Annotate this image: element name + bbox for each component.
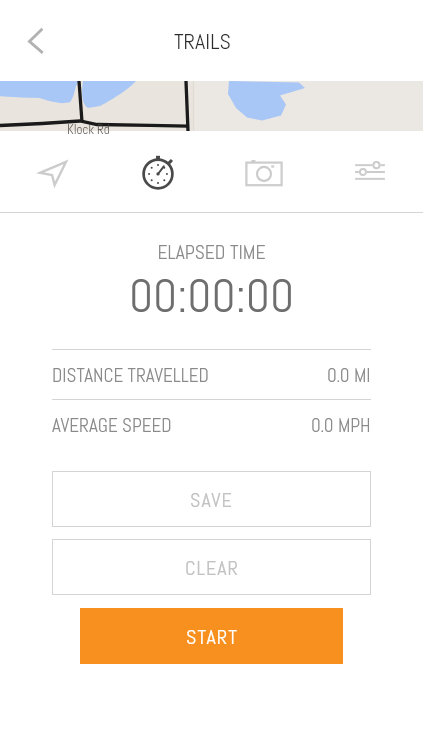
staticText: DISTANCE TRAVELLED — [52, 363, 209, 387]
staticText: TRAILS — [174, 27, 231, 55]
staticText: AVERAGE SPEED — [52, 413, 172, 437]
staticText: START — [186, 624, 238, 649]
staticText: ELAPSED TIME — [0, 240, 423, 265]
button[interactable]: Back — [12, 17, 60, 65]
button[interactable]: CLEAR — [52, 539, 371, 595]
staticText: SAVE — [190, 487, 233, 512]
button[interactable]: Settings — [317, 131, 423, 212]
staticText: Klock Rd — [67, 121, 110, 138]
staticText: 0.0 MI — [327, 363, 371, 387]
staticText: 00:00:00 — [0, 266, 423, 326]
button[interactable]: SAVE — [52, 471, 371, 527]
button[interactable]: Stopwatch — [105, 131, 211, 212]
staticText: CLEAR — [185, 555, 239, 580]
button[interactable]: START — [80, 608, 343, 664]
button[interactable]: Camera — [211, 131, 317, 212]
staticText: 0.0 MPH — [311, 413, 371, 437]
button[interactable]: Navigate — [0, 131, 105, 212]
